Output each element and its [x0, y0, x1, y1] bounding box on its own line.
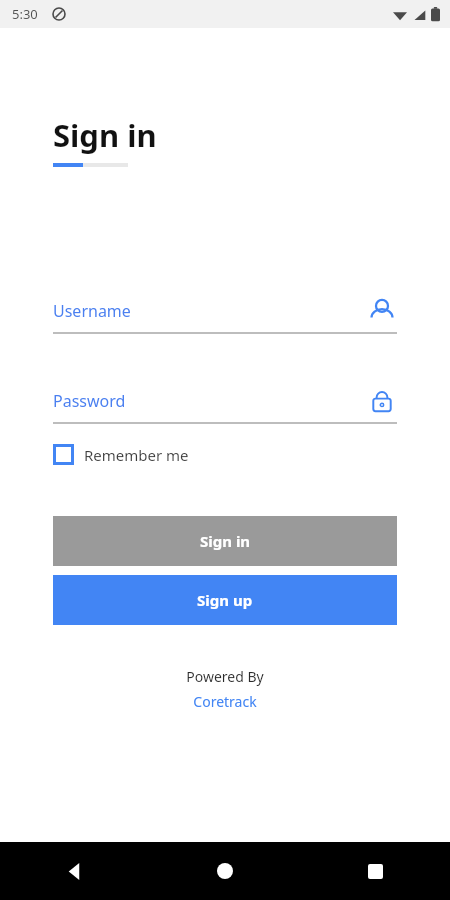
button[interactable]: Coretrack — [193, 692, 257, 711]
button[interactable]: Sign up — [53, 575, 397, 625]
button[interactable]: Home — [150, 842, 300, 900]
button[interactable]: Remember me — [53, 444, 189, 465]
button[interactable]: Password — [53, 384, 397, 417]
staticText: Sign in — [53, 114, 157, 156]
staticText: Sign up — [197, 590, 253, 610]
staticText: Remember me — [84, 445, 189, 465]
staticText: 5:30 — [12, 5, 38, 23]
staticText: Sign in — [200, 531, 251, 551]
button[interactable]: Sign in — [53, 516, 397, 566]
staticText: Coretrack — [193, 692, 257, 711]
button[interactable]: Recents — [300, 842, 450, 900]
staticText: Username — [53, 300, 367, 322]
other: Username — [367, 296, 397, 326]
staticText: Powered By — [186, 667, 264, 686]
other: Password — [367, 386, 397, 416]
staticText: Password — [53, 390, 367, 412]
button[interactable]: Back — [0, 842, 150, 900]
button[interactable]: Username — [53, 294, 397, 327]
